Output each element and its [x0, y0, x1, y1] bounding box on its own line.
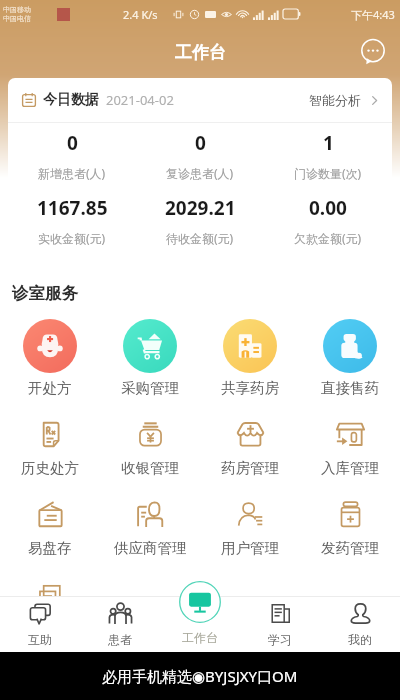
button[interactable]: 开处方 [0, 316, 100, 398]
staticText: 中国移动 [3, 5, 31, 14]
button[interactable]: 患者 [80, 596, 160, 652]
button[interactable]: 药房管理 [200, 398, 300, 478]
staticText: 今日数据 [43, 91, 99, 109]
staticText: 欠款金额(元) [294, 230, 362, 246]
staticText: 中国电信 [3, 14, 31, 23]
staticText: 采购管理 [121, 379, 179, 397]
button[interactable]: 入库管理 [300, 398, 400, 478]
staticText: 2021-04-02 [106, 91, 174, 109]
staticText: 入库管理 [321, 459, 379, 477]
staticText: 开处方 [28, 379, 72, 397]
staticText: 实收金额(元) [38, 230, 106, 246]
staticText: 必用手机精选◉BYJSJXY口OM [102, 666, 298, 686]
staticText: 下午4:43 [351, 7, 395, 22]
button[interactable]: 用户管理 [200, 478, 300, 558]
staticText: 复诊患者(人) [166, 165, 234, 181]
button[interactable]: 直接售药 [300, 316, 400, 398]
staticText: 0.00 [309, 195, 347, 221]
staticText: 工作台 [175, 42, 226, 63]
staticText: 门诊数量(次) [294, 165, 362, 181]
button[interactable]: 学习 [240, 596, 320, 652]
button[interactable]: 工作台 [179, 581, 221, 623]
staticText: 共享药房 [221, 379, 279, 397]
staticText: 智能分析 [309, 92, 361, 108]
button[interactable]: 收银管理 [100, 398, 200, 478]
button[interactable]: 我的 [320, 596, 400, 652]
button[interactable]: 供应商管理 [100, 478, 200, 558]
staticText: 易盘存 [28, 539, 72, 557]
staticText: 供应商管理 [114, 539, 187, 557]
staticText: 0 [67, 130, 78, 156]
staticText: 诊室服务 [12, 283, 78, 304]
staticText: 我的 [348, 632, 372, 647]
staticText: 新增患者(人) [38, 165, 106, 181]
button[interactable]: 共享药房 [200, 316, 300, 398]
button[interactable]: 采购管理 [100, 316, 200, 398]
staticText: 发药管理 [321, 539, 379, 557]
staticText: 用户管理 [221, 539, 279, 557]
staticText: 收银管理 [121, 459, 179, 477]
button[interactable]: 报表 [0, 558, 100, 638]
staticText: 患者 [108, 632, 132, 647]
button[interactable]: 今日数据 [8, 78, 392, 122]
staticText: 1 [323, 130, 334, 156]
staticText: 2.4 K/s [123, 7, 158, 22]
staticText: 1167.85 [37, 195, 108, 221]
button[interactable]: 易盘存 [0, 478, 100, 558]
button[interactable]: 互助 [0, 596, 80, 652]
button[interactable]: 发药管理 [300, 478, 400, 558]
staticText: 0 [195, 130, 206, 156]
button[interactable]: 消息 [356, 35, 390, 69]
staticText: 待收金额(元) [166, 230, 234, 246]
staticText: 互助 [28, 632, 52, 647]
staticText: 2029.21 [165, 195, 236, 221]
staticText: 直接售药 [321, 379, 379, 397]
staticText: 历史处方 [21, 459, 79, 477]
staticText: 工作台 [182, 630, 218, 645]
button[interactable]: 历史处方 [0, 398, 100, 478]
staticText: 药房管理 [221, 459, 279, 477]
staticText: 学习 [268, 632, 292, 647]
